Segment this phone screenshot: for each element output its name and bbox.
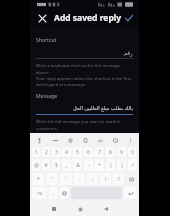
button[interactable]: 5	[73, 147, 82, 157]
staticText: 9	[120, 149, 123, 156]
button[interactable]: @	[32, 159, 40, 171]
button[interactable]: 9	[117, 147, 126, 157]
staticText: &	[76, 162, 80, 169]
button[interactable]: ?!#	[32, 187, 47, 199]
staticText: 8	[109, 149, 112, 156]
staticText: رقم	[124, 50, 133, 56]
button[interactable]: 6	[84, 147, 93, 157]
button[interactable]: Close	[34, 10, 50, 26]
button[interactable]: 1	[32, 147, 40, 157]
staticText: -	[88, 162, 90, 169]
staticText: /	[132, 162, 134, 169]
staticText: 4	[65, 149, 68, 156]
button[interactable]: ?	[113, 173, 124, 185]
button[interactable]: Home	[73, 202, 87, 216]
staticText: 6	[87, 149, 90, 156]
button[interactable]: :	[74, 173, 85, 185]
button[interactable]: 0	[128, 147, 137, 157]
button[interactable]: Back	[99, 202, 113, 216]
button[interactable]: 7	[95, 147, 104, 157]
staticText: "	[51, 176, 54, 183]
button[interactable]: ,	[49, 187, 58, 199]
button[interactable]: Delete	[126, 173, 137, 185]
button[interactable]: —	[47, 134, 63, 146]
staticText: )	[121, 162, 123, 169]
button[interactable]: )	[117, 159, 126, 171]
staticText: (	[110, 162, 112, 169]
staticText: #	[44, 162, 48, 169]
staticText: *	[37, 176, 40, 183]
button[interactable]: ab	[93, 134, 108, 146]
staticText: Shortcut	[36, 37, 57, 44]
button[interactable]: Language	[60, 187, 69, 199]
button[interactable]: clip	[78, 134, 93, 146]
button[interactable]: more	[123, 134, 138, 146]
button[interactable]: !	[100, 173, 111, 185]
staticText: Add saved reply	[54, 12, 122, 24]
button[interactable]: 2	[42, 147, 50, 157]
button[interactable]: #	[42, 159, 50, 171]
staticText: ;	[92, 176, 94, 183]
staticText: ?!#	[37, 191, 43, 196]
staticText: بالك بطلب مبلغ الطلبين الحل	[73, 105, 133, 112]
staticText: $	[55, 162, 58, 169]
staticText: ,	[53, 190, 55, 197]
button[interactable]: /	[128, 159, 137, 171]
staticText: '	[65, 176, 67, 183]
button[interactable]: 4	[62, 147, 71, 157]
button[interactable]: 3	[52, 147, 60, 157]
staticText: +	[98, 162, 101, 169]
button[interactable]: *	[32, 173, 44, 185]
staticText: Message	[36, 93, 58, 100]
staticText: 1	[35, 149, 38, 156]
button[interactable]: ;	[87, 173, 98, 185]
button[interactable]: img	[108, 134, 123, 146]
button[interactable]: &	[73, 159, 82, 171]
button[interactable]: بالك بطلب مبلغ الطلبين الحل	[36, 105, 133, 112]
button[interactable]: mic	[31, 134, 47, 146]
button[interactable]: gear	[63, 134, 78, 146]
button[interactable]: Enter	[124, 187, 137, 199]
staticText: 7	[98, 149, 101, 156]
staticText: 5	[76, 149, 79, 156]
staticText: 0	[131, 149, 134, 156]
staticText: !	[105, 176, 107, 183]
staticText: Write a keyboard shortcut for the messag…	[36, 63, 133, 87]
button[interactable]: $	[52, 159, 60, 171]
button[interactable]: Save	[122, 10, 135, 26]
button[interactable]: +	[95, 159, 104, 171]
staticText: ab	[98, 138, 103, 143]
button[interactable]: '	[60, 173, 72, 185]
button[interactable]: -	[84, 159, 93, 171]
staticText: :	[79, 176, 81, 183]
staticText: _	[65, 162, 68, 169]
button[interactable]: "	[46, 173, 58, 185]
staticText: @	[34, 162, 39, 169]
button[interactable]: رقم	[36, 50, 133, 56]
button[interactable]: (	[106, 159, 115, 171]
button[interactable]: Recents	[47, 202, 61, 216]
button[interactable]: _	[62, 159, 71, 171]
staticText: 3	[55, 149, 58, 156]
staticText: Write the full message you want to send …	[36, 119, 121, 131]
button[interactable]: 8	[106, 147, 115, 157]
staticText: 2	[45, 149, 48, 156]
staticText: ?	[117, 176, 120, 183]
